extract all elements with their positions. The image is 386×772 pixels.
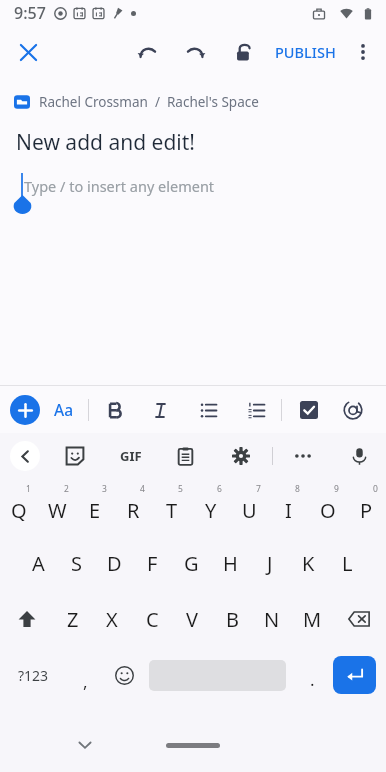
staticText: C xyxy=(146,606,159,633)
button[interactable]: ?123 xyxy=(0,647,66,703)
button[interactable]: Back xyxy=(10,441,40,471)
button[interactable]: Close xyxy=(8,32,48,72)
staticText: S xyxy=(71,550,82,577)
staticText: F xyxy=(147,550,158,577)
button[interactable]: Rachel Crossman / Rachel's Space xyxy=(0,93,386,111)
button[interactable]: 4 xyxy=(114,479,152,535)
button[interactable]: Bulleted list xyxy=(193,395,223,425)
button[interactable]: Z xyxy=(53,591,92,647)
staticText: B xyxy=(226,606,239,633)
button[interactable]: Type / to insert any element xyxy=(0,174,386,199)
button[interactable]: Italic xyxy=(145,395,175,425)
button[interactable]: D xyxy=(95,535,133,591)
staticText: H xyxy=(223,550,238,577)
button[interactable]: Redo xyxy=(175,32,215,72)
staticText: I xyxy=(285,497,292,524)
staticText: R xyxy=(127,497,140,524)
staticText: . xyxy=(310,668,315,691)
button[interactable]: 3 xyxy=(76,479,114,535)
staticText: 9:57 xyxy=(14,2,46,24)
staticText: 0 xyxy=(373,483,378,495)
staticText: T xyxy=(166,497,178,524)
button[interactable]: Voice input xyxy=(342,439,376,473)
button[interactable]: Emoji xyxy=(104,647,144,703)
staticText: 5 xyxy=(178,483,183,495)
button[interactable]: Unlock xyxy=(223,32,263,72)
staticText: GIF xyxy=(120,447,142,465)
staticText: 9 xyxy=(334,483,339,495)
button[interactable]: A xyxy=(19,535,57,591)
button[interactable]: 7 xyxy=(230,479,269,535)
button[interactable]: Aa xyxy=(48,394,80,425)
button[interactable]: Bold xyxy=(99,395,129,425)
button[interactable]: Hide keyboard xyxy=(67,727,103,763)
staticText: A xyxy=(32,550,45,577)
button[interactable]: 8 xyxy=(269,479,308,535)
button[interactable]: Insert xyxy=(10,395,40,425)
button[interactable]: G xyxy=(172,535,211,591)
staticText: ?123 xyxy=(18,666,49,685)
button[interactable]: X xyxy=(92,591,132,647)
button[interactable]: More xyxy=(286,439,320,473)
button[interactable]: PUBLISH xyxy=(267,34,344,70)
button[interactable]: . xyxy=(291,647,333,703)
button[interactable]: 0 xyxy=(347,479,386,535)
button[interactable]: M xyxy=(292,591,332,647)
button[interactable]: C xyxy=(132,591,172,647)
button[interactable]: L xyxy=(328,535,367,591)
staticText: P xyxy=(360,497,373,524)
staticText: Q xyxy=(11,497,27,524)
staticText: D xyxy=(107,550,122,577)
staticText: U xyxy=(242,497,257,524)
button[interactable]: Undo xyxy=(127,32,167,72)
staticText: J xyxy=(267,550,273,577)
staticText: Z xyxy=(67,606,79,633)
button[interactable]: J xyxy=(250,535,289,591)
staticText: 1 xyxy=(26,483,31,495)
staticText: PUBLISH xyxy=(275,42,336,62)
button[interactable]: 6 xyxy=(191,479,230,535)
staticText: X xyxy=(106,606,118,633)
staticText: , xyxy=(83,670,88,693)
staticText: 6 xyxy=(217,483,222,495)
button[interactable]: GIF xyxy=(114,439,148,473)
button[interactable]: Backspace xyxy=(332,591,386,647)
button[interactable]: Numbered list xyxy=(241,395,271,425)
button[interactable]: N xyxy=(252,591,292,647)
button[interactable]: More options xyxy=(344,33,382,71)
button[interactable]: F xyxy=(133,535,172,591)
staticText: E xyxy=(89,497,101,524)
staticText: 3 xyxy=(102,483,107,495)
button[interactable]: , xyxy=(66,647,104,703)
button[interactable]: S xyxy=(57,535,95,591)
button[interactable]: Mention xyxy=(338,395,368,425)
staticText: 7 xyxy=(256,483,261,495)
button[interactable]: K xyxy=(289,535,328,591)
staticText: O xyxy=(320,497,336,524)
button[interactable]: Settings xyxy=(224,439,258,473)
button[interactable]: H xyxy=(211,535,250,591)
button[interactable]: 2 xyxy=(38,479,76,535)
button[interactable]: B xyxy=(212,591,252,647)
staticText: V xyxy=(186,606,198,633)
staticText: Aa xyxy=(54,399,74,420)
button[interactable]: V xyxy=(172,591,212,647)
staticText: New add and edit! xyxy=(16,128,195,157)
staticText: 8 xyxy=(295,483,300,495)
button[interactable]: Stickers xyxy=(58,439,92,473)
button[interactable]: 9 xyxy=(308,479,347,535)
button[interactable]: Home xyxy=(166,743,220,748)
button[interactable]: 1 xyxy=(0,479,38,535)
staticText: W xyxy=(48,497,67,524)
button[interactable]: New add and edit! xyxy=(0,128,386,157)
button[interactable]: Enter xyxy=(333,656,376,694)
button[interactable]: Checklist xyxy=(294,395,324,425)
button[interactable]: 5 xyxy=(152,479,191,535)
button[interactable]: Clipboard xyxy=(168,439,202,473)
staticText: 4 xyxy=(140,483,145,495)
staticText: M xyxy=(303,606,322,633)
button[interactable]: Shift xyxy=(0,591,53,647)
staticText: Y xyxy=(205,497,217,524)
staticText: G xyxy=(184,550,199,577)
